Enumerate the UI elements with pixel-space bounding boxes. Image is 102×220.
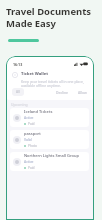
staticText: Photo	[28, 144, 37, 148]
staticText: passport	[24, 131, 41, 136]
staticText: Paid	[28, 122, 35, 126]
staticText: 16:13	[13, 62, 23, 67]
button[interactable]: passport	[10, 130, 89, 149]
staticText: Upcoming	[11, 102, 28, 107]
staticText: Active	[24, 159, 34, 164]
staticText: Northern Lights Small Group Tour	[24, 153, 86, 158]
staticText: Valid	[24, 137, 32, 142]
staticText: Iceland Tickets	[24, 109, 53, 114]
button[interactable]: Allow	[77, 89, 88, 96]
button[interactable]: Decline	[55, 89, 69, 96]
button[interactable]: Northern Lights Small Group Tour	[10, 152, 89, 171]
staticText: Allow	[78, 90, 87, 95]
staticText: Ticket Wallet	[21, 71, 49, 77]
staticText: Travel Documents Made Easy	[6, 5, 92, 30]
staticText: All	[16, 90, 20, 94]
staticText: Keep your travel tickets all in one plac…	[21, 79, 84, 88]
staticText: Decline	[56, 90, 68, 95]
button[interactable]: Iceland Tickets	[10, 108, 89, 127]
button[interactable]: All	[12, 88, 24, 96]
staticText: Paid	[28, 166, 35, 170]
staticText: Active	[24, 115, 34, 120]
